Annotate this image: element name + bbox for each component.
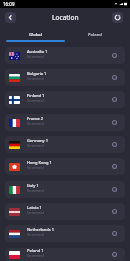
staticText: France 2 [27,116,44,121]
staticText: Hong Kong 1 [27,160,52,165]
button[interactable]: Global [6,30,65,42]
staticText: Recommend [27,144,44,148]
staticText: Recommend [27,122,44,126]
staticText: Recommend [27,55,44,59]
staticText: Australia 1 [27,49,48,54]
button[interactable]: France 2 [5,114,125,131]
staticText: Recommend [27,77,44,81]
button[interactable]: Italy 1 [5,181,125,198]
staticText: Poland [88,32,102,38]
staticText: Recommend [27,233,44,237]
button[interactable]: Refresh [112,12,123,23]
staticText: Poland 1 [27,248,44,253]
staticText: Recommend [27,211,44,215]
staticText: Recommend [27,166,44,170]
staticText: Location [52,13,79,22]
button[interactable]: Germany 1 [5,136,125,153]
staticText: Finland 1 [27,93,45,98]
button[interactable]: Poland [65,30,124,42]
button[interactable]: Australia 1 [5,47,125,64]
button[interactable]: Latvia 1 [5,203,125,220]
button[interactable]: Finland 1 [5,91,125,108]
button[interactable]: Hong Kong 1 [5,158,125,175]
staticText: Recommend [27,189,44,193]
staticText: Latvia 1 [27,205,42,210]
staticText: Bulgaria 1 [27,71,47,76]
staticText: Italy 1 [27,183,39,188]
staticText: Recommend [27,99,44,103]
button[interactable]: Poland 1 [5,248,125,261]
staticText: Netherlands 1 [27,227,55,232]
button[interactable]: Back [5,12,16,23]
staticText: Recommend [27,254,44,258]
staticText: 16:09 [3,1,15,7]
button[interactable]: Netherlands 1 [5,225,125,242]
staticText: Global [29,32,42,38]
staticText: Germany 1 [27,138,48,143]
button[interactable]: Bulgaria 1 [5,69,125,86]
